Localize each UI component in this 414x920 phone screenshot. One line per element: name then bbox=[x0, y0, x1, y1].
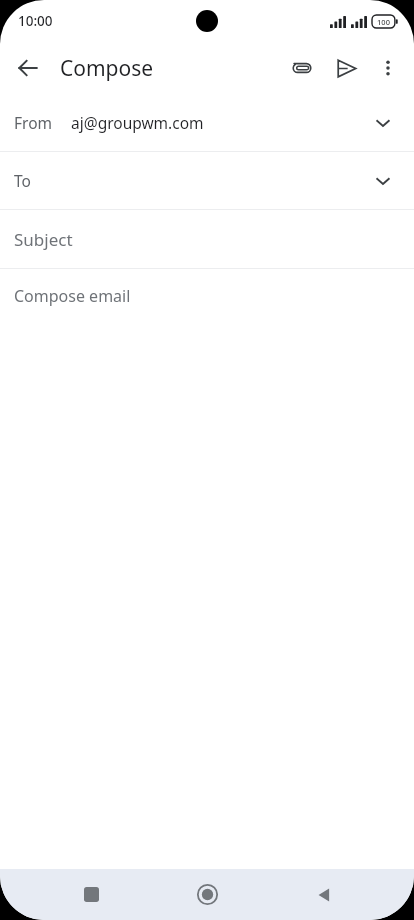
staticText: Compose email bbox=[14, 285, 131, 307]
staticText: From bbox=[14, 112, 53, 133]
other: Expand recipients bbox=[361, 159, 405, 203]
staticText: 100 bbox=[377, 17, 390, 27]
button[interactable]: Subject bbox=[0, 210, 414, 268]
staticText: 10:00 bbox=[18, 12, 53, 30]
button[interactable]: More options bbox=[368, 48, 408, 88]
button[interactable]: Compose email bbox=[0, 269, 414, 323]
staticText: Subject bbox=[14, 228, 73, 251]
staticText: aj@groupwm.com bbox=[71, 112, 204, 133]
button[interactable]: To bbox=[0, 152, 414, 209]
button[interactable]: Home bbox=[181, 869, 233, 920]
button[interactable]: Recent apps bbox=[65, 869, 117, 920]
staticText: To bbox=[14, 170, 31, 191]
button[interactable]: Send bbox=[324, 46, 368, 90]
button[interactable]: From bbox=[0, 94, 414, 151]
button[interactable]: Attach file bbox=[280, 46, 324, 90]
button[interactable]: Back bbox=[298, 869, 350, 920]
other: Expand from bbox=[361, 101, 405, 145]
staticText: Compose bbox=[60, 54, 154, 83]
button[interactable]: Back bbox=[6, 46, 50, 90]
